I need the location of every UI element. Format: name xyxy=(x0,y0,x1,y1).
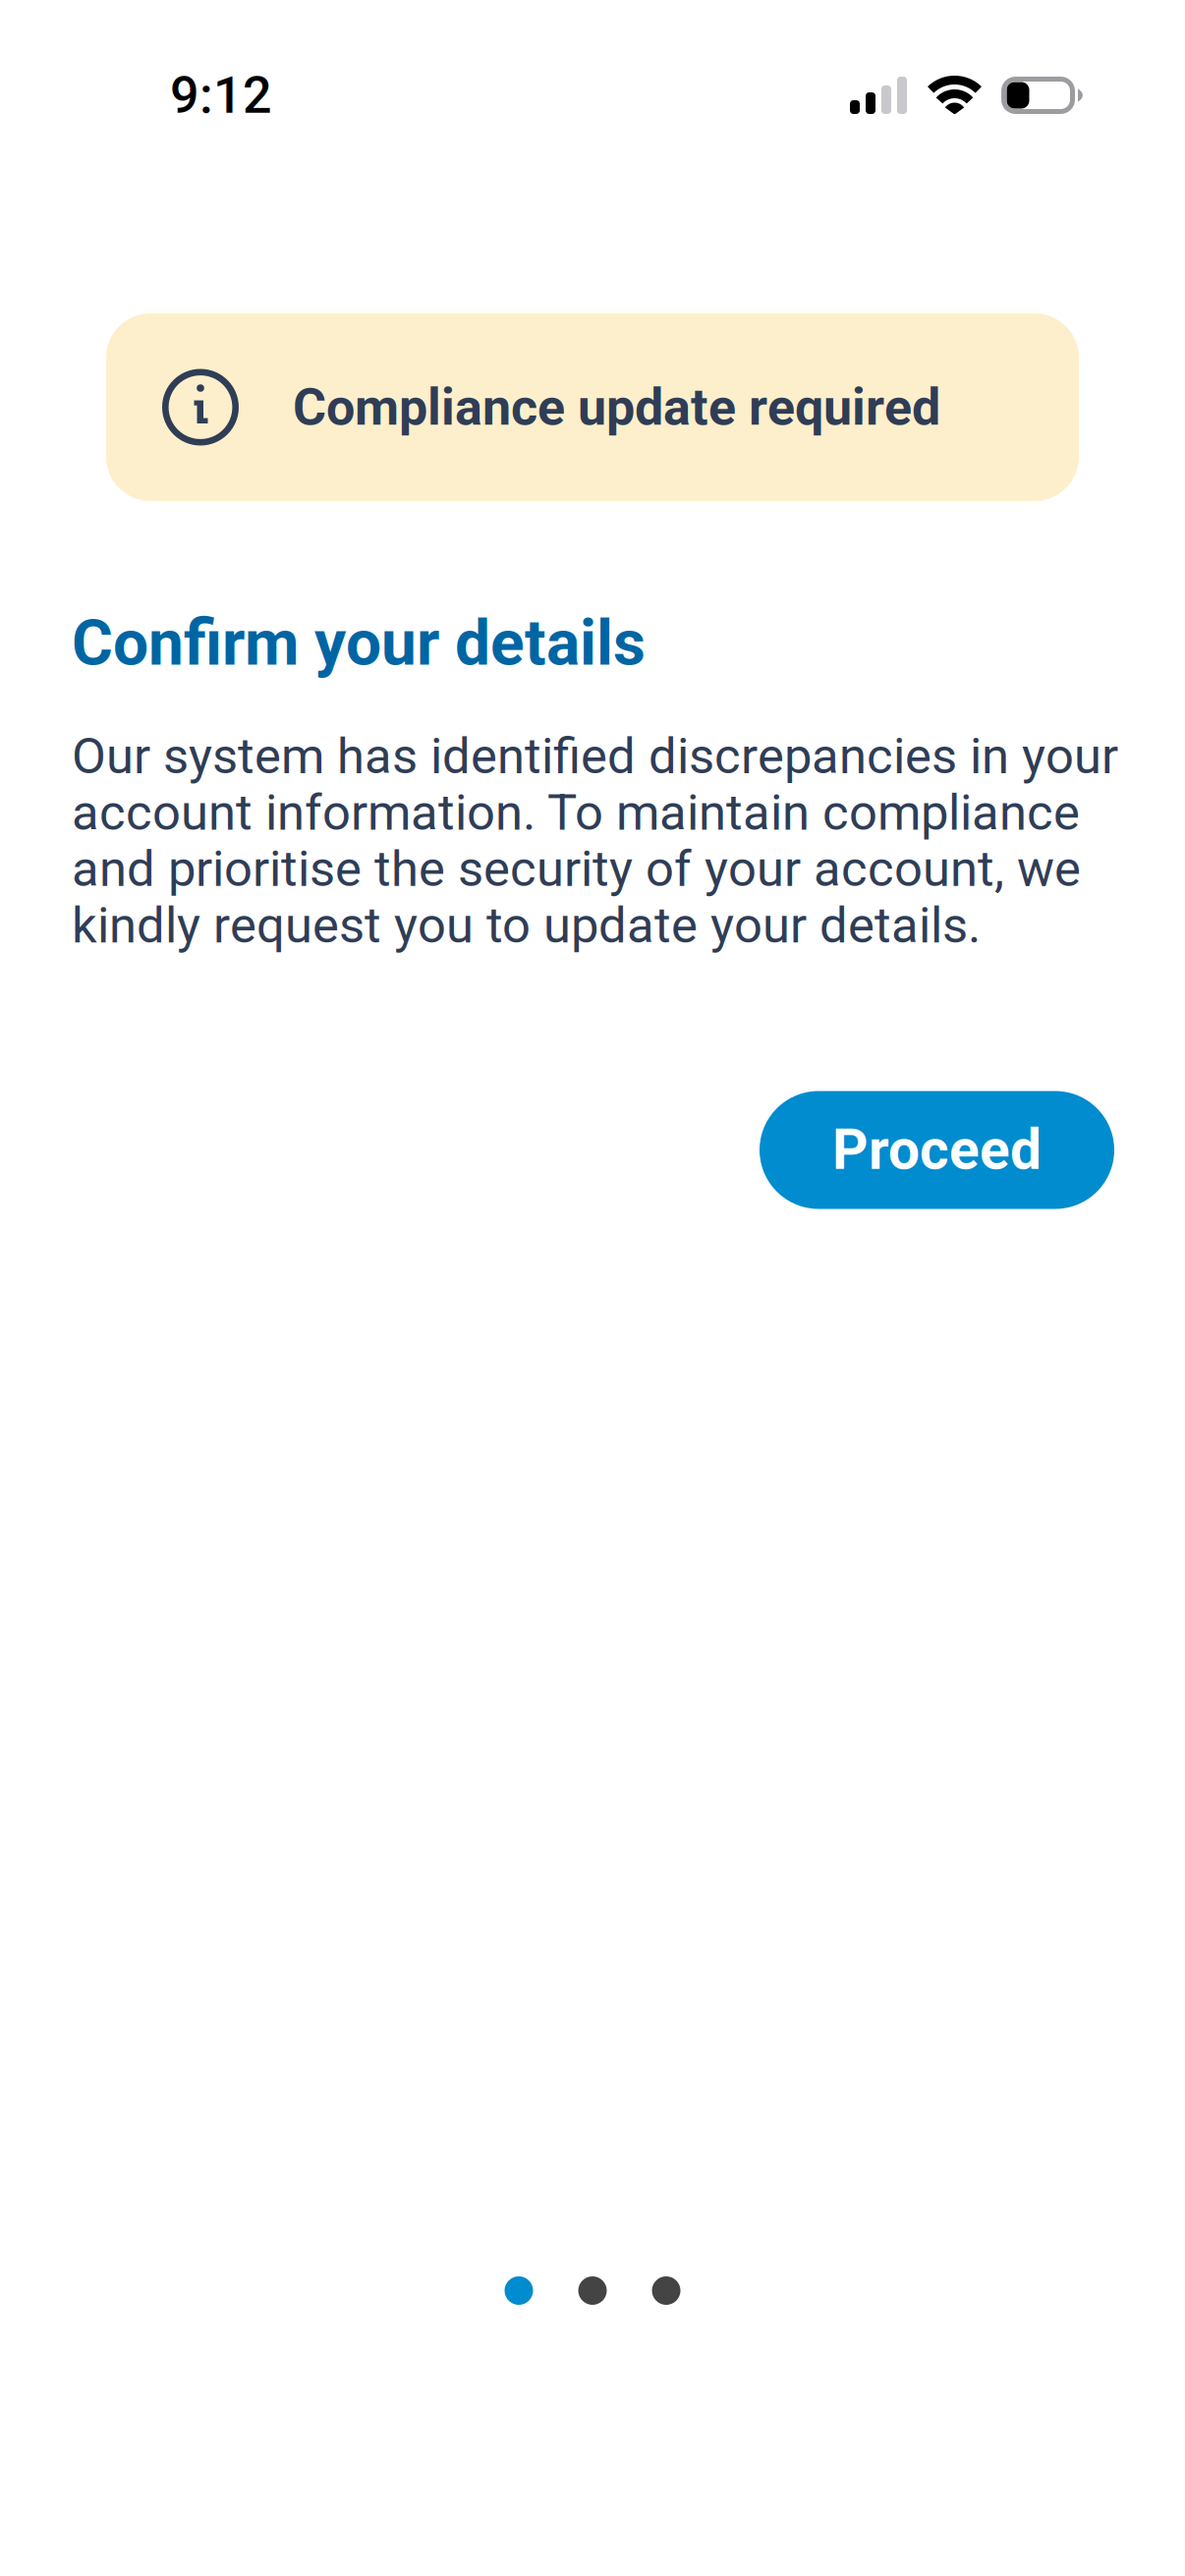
staticText: 9:12 xyxy=(170,65,272,125)
button[interactable]: Page 2 xyxy=(578,2276,607,2305)
button[interactable]: Proceed xyxy=(760,1091,1114,1209)
staticText: Compliance update required xyxy=(293,377,940,437)
staticText: Proceed xyxy=(832,1117,1042,1183)
button[interactable]: Compliance update required xyxy=(106,313,1079,501)
staticText: Confirm your details xyxy=(72,606,646,680)
staticText: Our system has identified discrepancies … xyxy=(72,727,1118,954)
button[interactable]: Page 1, current page xyxy=(505,2276,533,2305)
button[interactable]: Page 3 xyxy=(652,2276,680,2305)
